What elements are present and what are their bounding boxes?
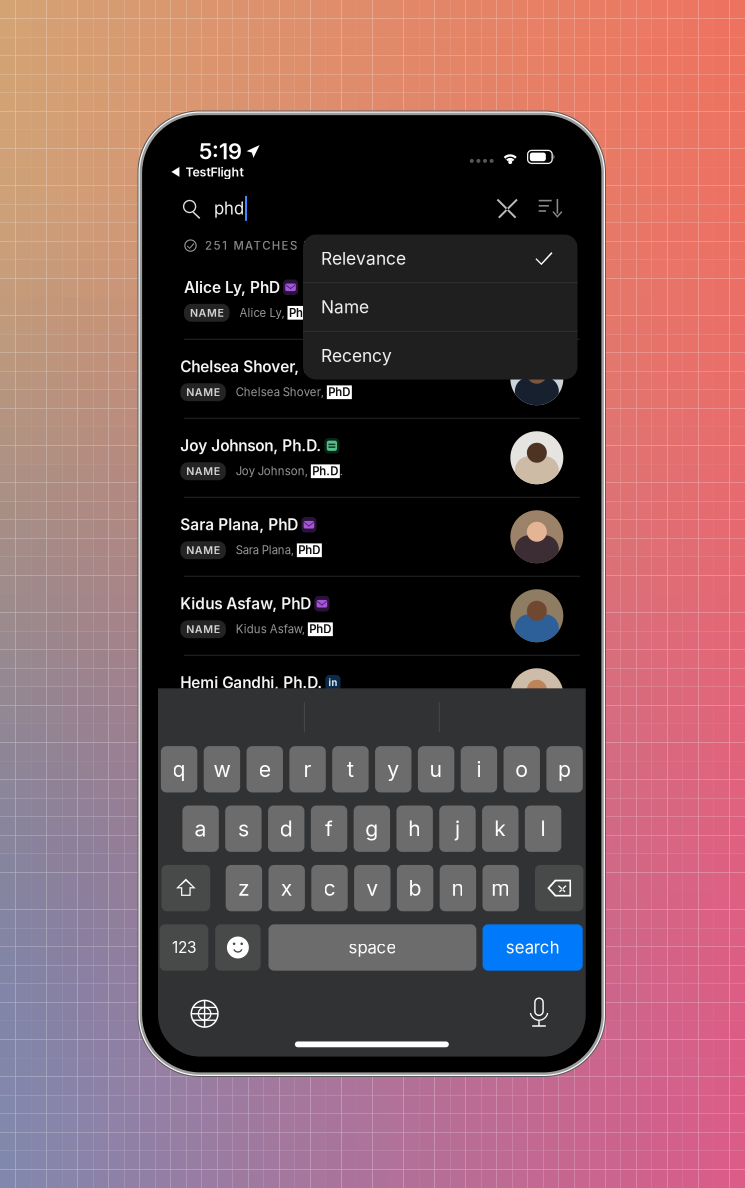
staticText: b (409, 875, 422, 901)
staticText: a (195, 816, 207, 842)
staticText: NAME (190, 306, 223, 319)
staticText: h (408, 816, 421, 842)
staticText: Kidus Asfaw, PhD (180, 594, 311, 613)
staticText: c (323, 875, 335, 901)
staticText: Name (321, 296, 369, 317)
button[interactable]: Recency (303, 332, 577, 379)
staticText: 251 MATCHES FOUND (205, 239, 351, 252)
button[interactable]: Sort results (539, 197, 563, 219)
button[interactable]: k (482, 806, 518, 852)
button[interactable]: u (418, 746, 454, 792)
staticText: PhD (289, 306, 311, 320)
staticText: Sara Plana, (236, 543, 297, 557)
staticText: search (506, 937, 560, 958)
button[interactable]: v (354, 865, 390, 911)
staticText: TestFlight (185, 164, 243, 179)
staticText: 123 (172, 938, 196, 957)
button[interactable]: shift (161, 865, 210, 911)
button[interactable]: Kidus Asfaw, PhD (158, 576, 586, 655)
staticText: Chelsea Shover, PhD (180, 357, 333, 376)
button[interactable]: l (525, 806, 561, 852)
button[interactable]: Joy Johnson, Ph.D. (158, 418, 586, 497)
staticText: PhD (298, 543, 320, 557)
button[interactable]: j (439, 806, 476, 852)
staticText: Kidus Asfaw, (236, 622, 308, 636)
staticText: Ph.D (312, 464, 338, 478)
button[interactable]: s (225, 806, 262, 852)
staticText: PhD (328, 385, 350, 399)
staticText: r (304, 756, 312, 782)
staticText: in (328, 677, 337, 688)
staticText: f (325, 816, 333, 842)
button[interactable]: q (161, 746, 197, 792)
button[interactable]: x (268, 865, 305, 911)
staticText: d (280, 816, 293, 842)
button[interactable]: Name (303, 283, 577, 331)
staticText: t (347, 756, 354, 782)
button[interactable]: d (268, 806, 304, 852)
staticText: k (494, 816, 506, 842)
button[interactable]: 123 (160, 924, 208, 971)
staticText: Joy Johnson, Ph.D. (180, 436, 321, 455)
button[interactable]: y (375, 746, 411, 792)
button[interactable]: Switch keyboard (190, 999, 219, 1029)
staticText: NAME (186, 544, 220, 557)
button[interactable]: Relevance (303, 234, 577, 282)
button[interactable]: c (311, 865, 348, 911)
staticText: x (281, 875, 293, 901)
staticText: q (173, 756, 186, 782)
staticText: s (238, 816, 249, 842)
staticText: NAME (186, 465, 220, 478)
staticText: z (238, 875, 250, 901)
staticText: i (476, 756, 481, 782)
button[interactable]: g (354, 806, 390, 852)
button[interactable]: delete (535, 865, 583, 911)
button[interactable]: i (461, 746, 497, 792)
staticText: y (387, 756, 399, 782)
button[interactable]: space (268, 924, 476, 971)
button[interactable]: Chelsea Shover, PhD (158, 339, 586, 418)
button[interactable]: r (289, 746, 326, 792)
button[interactable]: h (396, 806, 433, 852)
button[interactable]: t (332, 746, 369, 792)
button[interactable]: z (226, 865, 262, 911)
button[interactable]: a (182, 806, 219, 852)
staticText: Alice Ly, PhD (184, 278, 280, 297)
button[interactable]: n (440, 865, 476, 911)
staticText: n (451, 875, 464, 901)
staticText: e (259, 756, 271, 782)
staticText: p (558, 756, 571, 782)
staticText: NAME (186, 623, 220, 636)
staticText: phd (214, 198, 244, 218)
button[interactable]: Sara Plana, PhD (158, 497, 586, 576)
staticText: v (366, 875, 378, 901)
staticText: Hemi Gandhi, Ph.D. (180, 673, 322, 692)
staticText: . (340, 464, 343, 478)
staticText: Chelsea Shover, (236, 385, 327, 399)
button[interactable]: m (482, 865, 519, 911)
button[interactable]: search (483, 924, 583, 971)
staticText: w (213, 756, 230, 782)
staticText: g (365, 816, 378, 842)
button[interactable]: b (397, 865, 433, 911)
staticText: 5:19 (199, 138, 242, 165)
staticText: PhD (309, 622, 331, 636)
staticText: Sara Plana, PhD (180, 515, 298, 534)
button[interactable]: Clear search (496, 197, 518, 219)
staticText: NAME (186, 386, 220, 399)
button[interactable]: e (247, 746, 283, 792)
staticText: space (348, 937, 396, 958)
button[interactable]: Dictate (529, 997, 549, 1030)
button[interactable]: Alice Ly, PhD (158, 260, 586, 339)
staticText: Relevance (321, 248, 406, 269)
button[interactable]: f (311, 806, 347, 852)
staticText: l (541, 816, 546, 842)
button[interactable]: o (504, 746, 540, 792)
button[interactable]: w (204, 746, 240, 792)
button[interactable]: p (546, 746, 583, 792)
button[interactable]: emoji (215, 924, 261, 971)
button[interactable]: Hemi Gandhi, Ph.D. (158, 655, 586, 734)
